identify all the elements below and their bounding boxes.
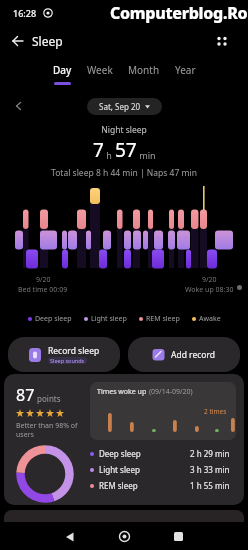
button[interactable]: Day xyxy=(53,63,72,85)
staticText: h xyxy=(104,149,115,161)
staticText: 3 h 33 min xyxy=(190,464,230,475)
button[interactable]: Sleep xyxy=(12,33,63,49)
staticText: 1 h 55 min xyxy=(190,480,230,491)
button[interactable]: Record sleep xyxy=(8,337,120,372)
staticText: Light sleep xyxy=(91,314,127,324)
staticText: Total sleep 8 h 44 min | Naps 47 min xyxy=(0,167,248,179)
staticText: Sleep xyxy=(32,33,63,49)
staticText: points xyxy=(35,393,61,404)
staticText: 7 xyxy=(93,137,104,163)
staticText: 9/20 xyxy=(36,275,51,285)
button[interactable]: Sat, Sep 20 xyxy=(87,98,162,115)
staticText: Sat, Sep 20 xyxy=(99,101,141,112)
staticText: REM sleep xyxy=(99,480,138,491)
button[interactable]: Month xyxy=(128,63,160,77)
staticText: 2 times xyxy=(204,407,227,416)
button[interactable]: Year xyxy=(175,63,196,77)
staticText: (09/14-09/20) xyxy=(149,387,193,397)
staticText: Computerblog.Ro xyxy=(110,2,248,24)
staticText: 16:28 xyxy=(13,7,37,19)
staticText: Add record xyxy=(171,349,216,361)
staticText: Deep sleep xyxy=(99,448,141,459)
staticText: min xyxy=(137,149,156,161)
button[interactable]: Week xyxy=(87,63,113,77)
staticText: Sleep sounds xyxy=(50,357,85,364)
staticText: 87 xyxy=(16,384,35,406)
staticText: 2 h 29 min xyxy=(190,448,230,459)
button[interactable]: Times woke up xyxy=(90,382,236,440)
staticText: Deep sleep xyxy=(35,314,72,324)
button[interactable] xyxy=(174,532,183,541)
staticText: Record sleep xyxy=(48,345,100,357)
staticText: Woke up 08:30 xyxy=(185,285,234,295)
staticText: REM sleep xyxy=(146,314,180,324)
staticText: 57 xyxy=(115,137,137,163)
staticText: Bed time 00:09 xyxy=(18,285,68,295)
staticText: Times woke up xyxy=(97,387,149,397)
button[interactable] xyxy=(119,531,130,542)
staticText: 9/20 xyxy=(202,275,217,285)
button[interactable] xyxy=(65,532,75,542)
staticText: Awake xyxy=(199,314,221,324)
button[interactable]: Add record xyxy=(128,337,240,372)
staticText: Light sleep xyxy=(99,464,140,475)
staticText: Better than 98% of users xyxy=(16,421,90,439)
staticText: Day xyxy=(53,63,72,77)
staticText: Night sleep xyxy=(0,124,248,136)
button[interactable] xyxy=(216,35,228,47)
